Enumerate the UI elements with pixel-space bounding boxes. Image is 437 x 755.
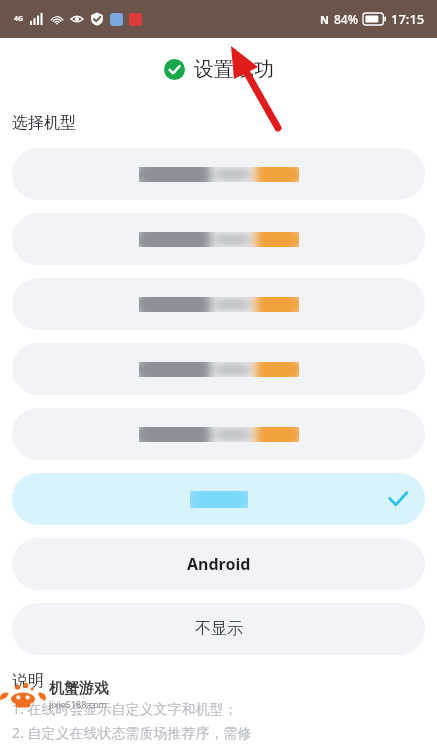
staticText: 设置成功 bbox=[194, 57, 274, 82]
button[interactable]: Android bbox=[12, 538, 425, 590]
staticText: Android bbox=[187, 553, 251, 575]
button[interactable] bbox=[12, 343, 425, 395]
staticText: 不显示 bbox=[195, 619, 243, 639]
staticText: 17:15 bbox=[391, 10, 425, 28]
button[interactable]: 设置成功 bbox=[2, 38, 435, 101]
button[interactable]: Selected bbox=[12, 473, 425, 525]
staticText: 1. 在线时会显示自定义文字和机型； bbox=[12, 699, 238, 718]
staticText: 84% bbox=[334, 11, 358, 27]
staticText: 选择机型 bbox=[12, 113, 76, 133]
staticText: 4G bbox=[14, 14, 24, 24]
staticText: 说明 bbox=[12, 671, 44, 691]
button[interactable] bbox=[12, 213, 425, 265]
staticText: N bbox=[320, 12, 329, 27]
button[interactable] bbox=[12, 148, 425, 200]
staticText: 机蟹游戏 bbox=[49, 679, 109, 698]
button[interactable]: 不显示 bbox=[12, 603, 425, 655]
staticText: jixie5188.com bbox=[49, 698, 431, 710]
button[interactable] bbox=[12, 408, 425, 460]
other: Selected bbox=[387, 488, 409, 510]
staticText: 2. 自定义在线状态需质场推荐序，需修 bbox=[12, 723, 252, 742]
button[interactable] bbox=[12, 278, 425, 330]
